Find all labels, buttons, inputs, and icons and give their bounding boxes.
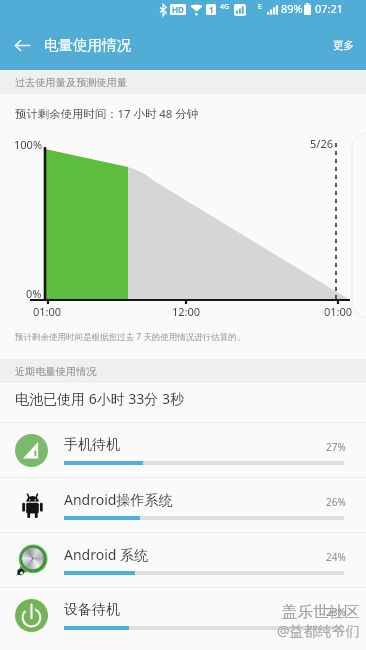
staticText: 预计剩余使用时间是根据您过去 7 天的使用情况进行估算的。 [15,331,246,343]
staticText: 26% [326,495,346,509]
staticText: 4G [220,2,230,12]
staticText: E [258,2,262,12]
staticText: 设备待机 [64,601,120,619]
button[interactable]: Back [0,23,44,67]
button[interactable]: Android 系统 [0,532,366,587]
staticText: 12:00 [172,304,201,319]
staticText: 23% [326,605,346,619]
staticText: 近期电量使用情况 [15,365,97,378]
staticText: 预计剩余使用时间：17 小时 48 分钟 [15,106,199,122]
staticText: 24% [326,550,346,564]
staticText: 电池已使用 6小时 33分 3秒 [15,389,184,408]
staticText: Android操作系统 [64,490,173,509]
staticText: 1 [209,4,214,15]
button[interactable]: Android操作系统 [0,477,366,532]
staticText: 0% [26,286,42,301]
staticText: 01:00 [33,304,62,319]
button[interactable]: 更多 [317,25,366,66]
staticText: 01:00 [324,304,353,319]
staticText: 电量使用情况 [44,36,131,54]
button[interactable]: 设备待机 [0,587,366,642]
staticText: 07:21 [315,1,344,16]
staticText: 27% [326,440,346,454]
staticText: 盖乐世社区 [282,602,360,622]
staticText: 手机待机 [64,436,120,454]
staticText: 5/26 [310,136,333,151]
staticText: HD [172,4,184,15]
staticText: @益都纯爷们 [277,621,360,640]
staticText: 100% [14,137,43,152]
staticText: Android 系统 [64,545,149,564]
staticText: 更多 [333,39,354,52]
staticText: 89% [281,1,303,16]
button[interactable]: 手机待机 [0,422,366,477]
staticText: 过去使用量及预测使用量 [15,76,128,89]
